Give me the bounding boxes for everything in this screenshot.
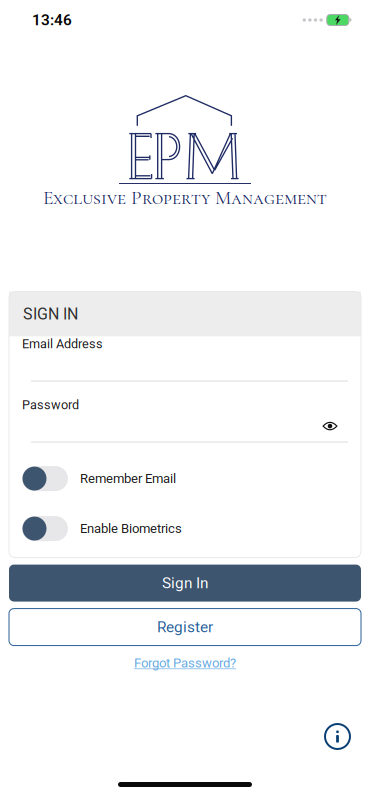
staticText: Exclusive Property Management (43, 186, 327, 210)
staticText: Password (22, 398, 79, 412)
button[interactable]: Information (323, 722, 352, 751)
button[interactable]: Sign In (9, 565, 361, 602)
button[interactable]: Enable Biometrics (9, 504, 361, 554)
staticText: Email Address (22, 337, 103, 351)
staticText: Register (157, 618, 213, 636)
button[interactable]: Show password (315, 411, 345, 442)
staticText: Sign In (162, 574, 208, 592)
staticText: 13:46 (32, 11, 72, 29)
button[interactable]: Remember Email (9, 454, 361, 504)
staticText: Enable Biometrics (80, 521, 182, 536)
button[interactable]: Register (9, 609, 361, 646)
staticText: Remember Email (80, 471, 176, 486)
staticText: SIGN IN (23, 305, 78, 323)
button[interactable]: Forgot Password? (134, 654, 236, 673)
staticText: Forgot Password? (134, 655, 236, 671)
